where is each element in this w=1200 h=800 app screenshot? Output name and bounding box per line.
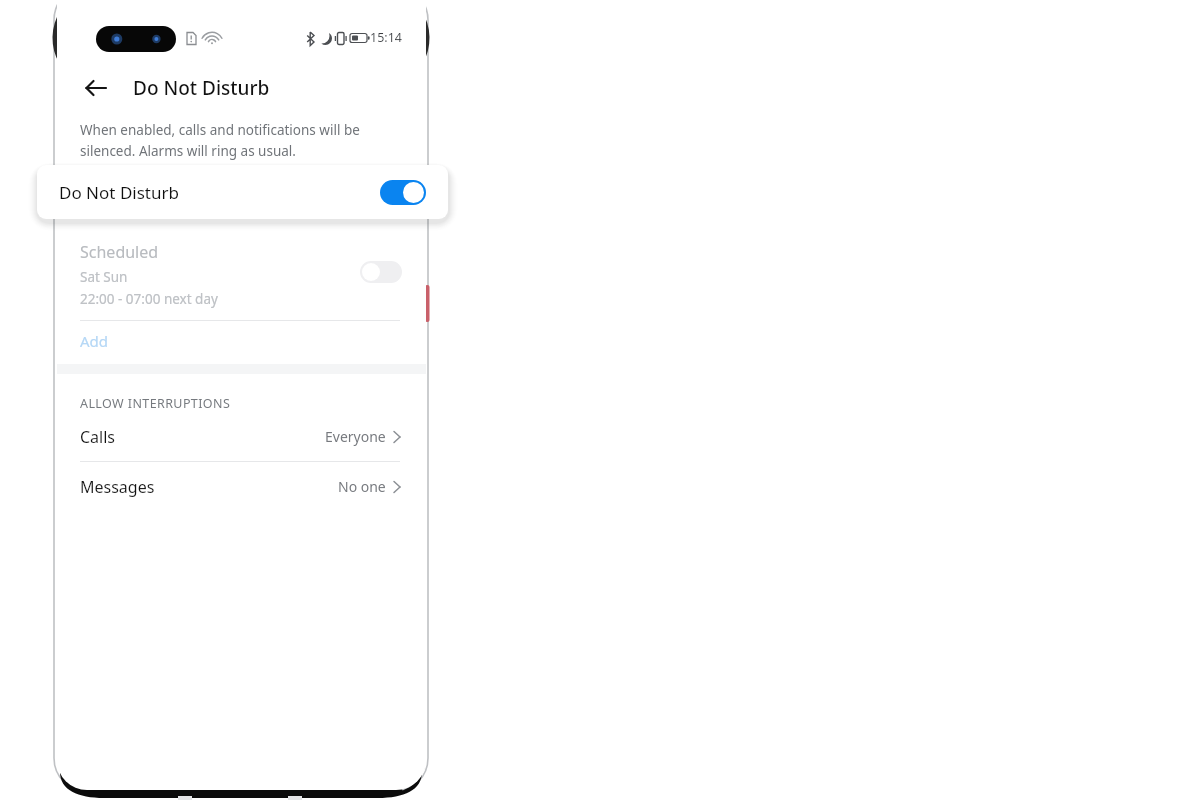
button[interactable]: Messages (57, 462, 426, 511)
button[interactable]: Calls (57, 412, 426, 461)
staticText: Sat Sun (80, 268, 128, 286)
staticText: No one (338, 477, 386, 496)
staticText: Calls (80, 426, 116, 448)
button[interactable]: Do Not Disturb toggle (380, 180, 426, 205)
staticText: Do Not Disturb (59, 181, 179, 204)
staticText: Everyone (325, 427, 386, 446)
staticText: Messages (80, 476, 155, 498)
staticText: Scheduled (80, 241, 159, 263)
staticText: 15:14 (370, 29, 402, 46)
button[interactable]: Do Not Disturb (37, 165, 448, 219)
staticText: 22:00 - 07:00 next day (80, 290, 218, 308)
button[interactable]: Add (80, 331, 109, 351)
staticText: Do Not Disturb (133, 75, 270, 101)
button[interactable]: Scheduled toggle (360, 261, 402, 283)
staticText: ALLOW INTERRUPTIONS (80, 395, 231, 412)
button[interactable]: Back (79, 71, 113, 105)
staticText: When enabled, calls and notifications wi… (80, 121, 360, 160)
